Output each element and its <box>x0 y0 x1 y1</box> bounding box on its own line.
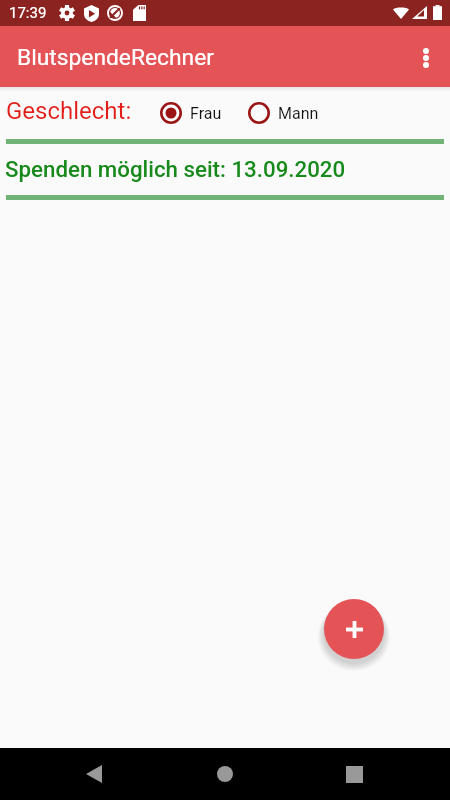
staticText: 17:39 <box>9 4 47 22</box>
staticText: Geschlecht: <box>6 97 132 125</box>
staticText: Mann <box>278 104 319 123</box>
button[interactable]: Zurück <box>74 754 114 794</box>
button[interactable]: Mehr Optionen <box>403 35 449 81</box>
staticText: Frau <box>190 104 222 123</box>
button[interactable]: Mann <box>248 102 319 124</box>
button[interactable]: Startseite <box>205 754 245 794</box>
button[interactable]: Frau <box>160 102 222 124</box>
staticText: Spenden möglich seit: 13.09.2020 <box>5 156 346 182</box>
button[interactable]: Zuletzt verwendet <box>334 754 374 794</box>
button[interactable]: Hinzufügen <box>324 599 384 659</box>
staticText: BlutspendeRechner <box>17 44 214 71</box>
